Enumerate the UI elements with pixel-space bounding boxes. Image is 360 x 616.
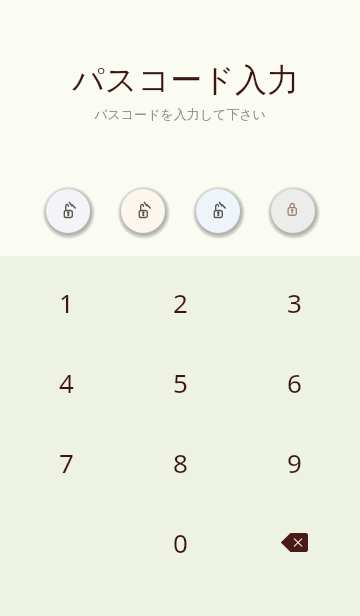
- staticText: 1: [59, 285, 74, 320]
- button[interactable]: 4: [9, 342, 123, 422]
- staticText: 2: [173, 285, 188, 320]
- button[interactable]: 3: [237, 262, 351, 342]
- button[interactable]: 0: [123, 502, 237, 582]
- button[interactable]: Delete: [237, 502, 351, 582]
- button[interactable]: 6: [237, 342, 351, 422]
- button[interactable]: Digit entered: [46, 189, 90, 233]
- staticText: 5: [173, 365, 188, 400]
- button[interactable]: 9: [237, 422, 351, 502]
- button[interactable]: Digit entered: [121, 189, 165, 233]
- button[interactable]: Digit empty: [271, 189, 315, 233]
- button[interactable]: 1: [9, 262, 123, 342]
- button[interactable]: 2: [123, 262, 237, 342]
- staticText: 4: [59, 365, 74, 400]
- staticText: 7: [59, 445, 74, 480]
- staticText: パスコードを入力して下さい: [94, 106, 266, 122]
- staticText: 6: [287, 365, 302, 400]
- staticText: 8: [173, 445, 188, 480]
- staticText: パスコード入力: [72, 60, 299, 100]
- other: Delete: [280, 533, 308, 552]
- button[interactable]: Digit entered: [196, 189, 240, 233]
- button[interactable]: 5: [123, 342, 237, 422]
- staticText: 0: [173, 525, 188, 560]
- staticText: 3: [287, 285, 302, 320]
- staticText: 9: [287, 445, 302, 480]
- button[interactable]: 8: [123, 422, 237, 502]
- button[interactable]: 7: [9, 422, 123, 502]
